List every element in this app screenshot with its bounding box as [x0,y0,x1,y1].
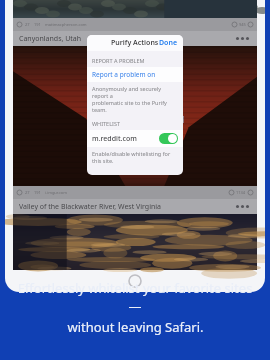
staticText: Purify Actions [111,38,159,48]
button[interactable]: More [236,205,251,208]
button[interactable]: Whitelist toggle, on [159,133,178,144]
staticText: Enable/disable whitelisting for this sit… [92,150,178,164]
staticText: Report a problem on m.reddit.com [92,70,178,79]
button[interactable]: Home [128,274,142,288]
staticText: REPORT A PROBLEM [92,57,145,64]
button[interactable]: More [236,37,251,40]
button[interactable]: Report a problem on m.reddit.com [87,67,183,82]
staticText: Done [159,38,178,48]
staticText: without leaving Safari. [67,318,204,336]
button[interactable]: m.reddit.com [87,130,183,147]
staticText: Anonymously and securely report a [92,85,178,99]
staticText: Valley of the Blackwater River, West Vir… [19,202,162,212]
staticText: 191 [34,22,41,27]
staticText: i.imgur.com [45,190,67,195]
staticText: m.reddit.com [92,134,137,144]
staticText: 1134 [236,190,246,195]
button[interactable]: Done [154,36,183,50]
staticText: 27 [25,190,30,195]
staticText: problematic site to the Purify team. [92,99,178,113]
staticText: Effortlessly whitelist your favorite sit… [14,279,256,315]
staticText: 27 [25,22,30,27]
staticText: 191 [34,190,41,195]
staticText: Canyonlands, Utah [19,34,82,44]
staticText: WHITELIST [92,120,120,127]
staticText: mattmacpherson.com [45,22,87,27]
staticText: 945 [239,22,246,27]
